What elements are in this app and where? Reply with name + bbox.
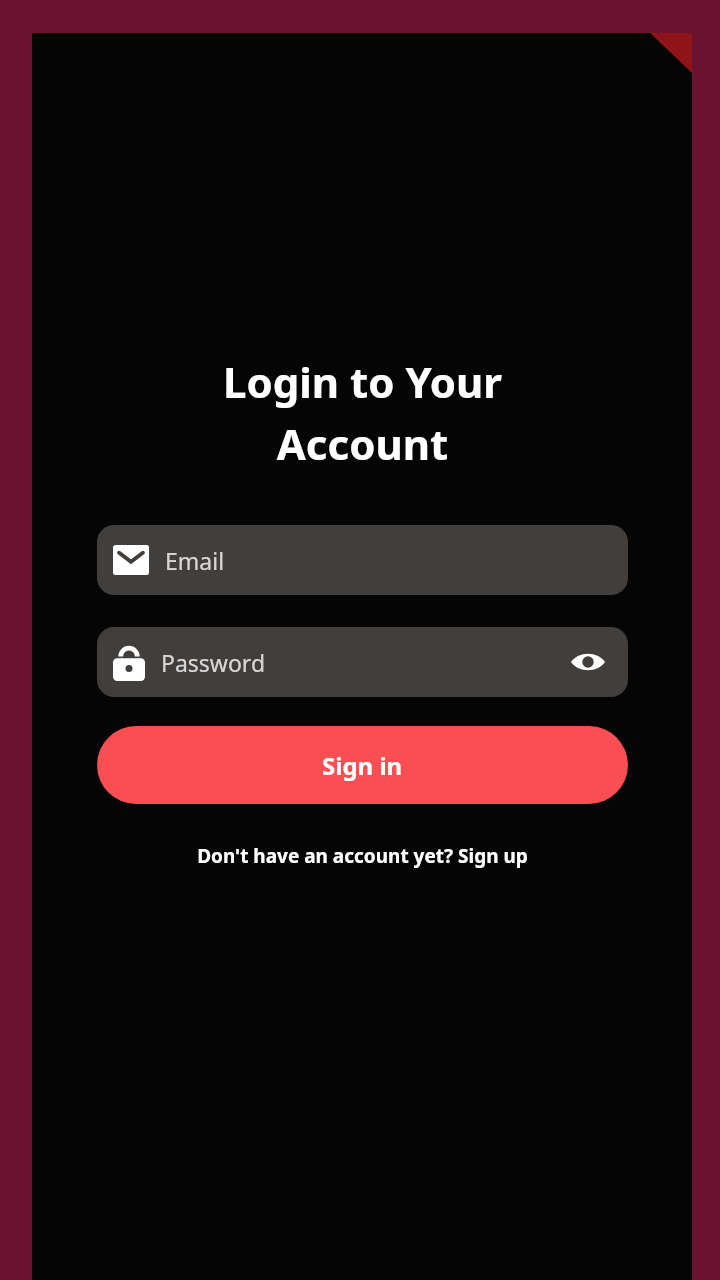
staticText: Password [161, 647, 266, 678]
button[interactable]: Email [97, 525, 628, 595]
button[interactable]: Show password [566, 640, 610, 684]
staticText: Email [165, 545, 225, 576]
staticText: Sign in [322, 749, 403, 782]
staticText: Login to Your Account [223, 353, 502, 472]
button[interactable]: Sign in [97, 726, 628, 804]
button[interactable]: Password [97, 627, 628, 697]
button[interactable]: Don't have an account yet? Sign up [187, 837, 538, 875]
staticText: Don't have an account yet? Sign up [197, 843, 528, 869]
